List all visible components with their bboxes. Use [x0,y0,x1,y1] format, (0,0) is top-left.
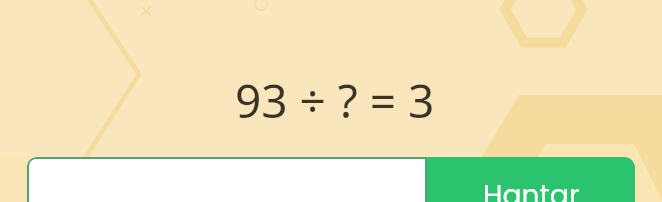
staticText: 93 ÷ ? = 3 [235,69,435,132]
button[interactable]: Hantar [427,157,635,202]
staticText: Hantar [483,175,580,202]
button[interactable] [27,157,427,202]
